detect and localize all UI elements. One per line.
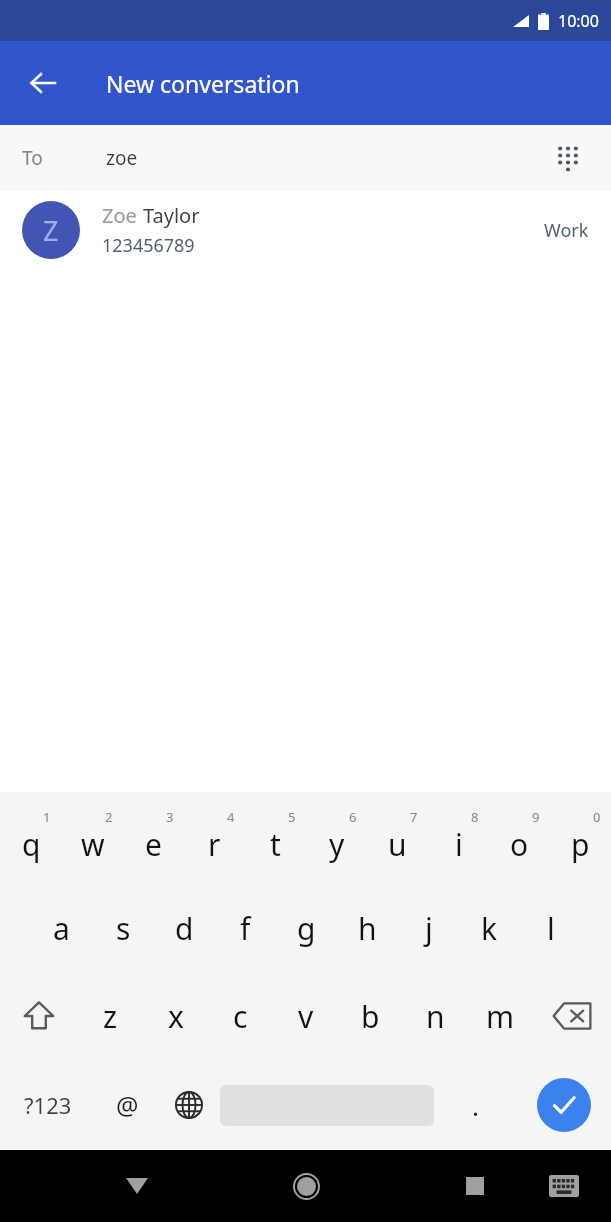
- staticText: x: [168, 996, 184, 1037]
- button[interactable]: n: [403, 972, 468, 1060]
- staticText: Z: [43, 212, 59, 249]
- staticText: w: [81, 824, 105, 865]
- button[interactable]: Recents: [450, 1161, 500, 1211]
- button[interactable]: 6: [306, 792, 367, 884]
- button[interactable]: 7: [367, 792, 428, 884]
- staticText: To: [22, 145, 43, 171]
- staticText: l: [547, 908, 555, 949]
- staticText: 10:00: [558, 10, 599, 32]
- staticText: n: [426, 996, 445, 1037]
- staticText: e: [145, 824, 162, 865]
- staticText: h: [358, 908, 377, 949]
- button[interactable]: l: [520, 884, 581, 972]
- button[interactable]: 4: [184, 792, 245, 884]
- staticText: Zoe: [102, 202, 143, 229]
- button[interactable]: Z: [0, 191, 611, 269]
- staticText: t: [270, 824, 281, 865]
- staticText: Taylor: [143, 202, 200, 229]
- staticText: 1: [43, 808, 51, 826]
- staticText: zoe: [106, 145, 138, 171]
- staticText: r: [208, 824, 221, 865]
- button[interactable]: x: [143, 972, 208, 1060]
- button[interactable]: Home: [281, 1161, 331, 1211]
- button[interactable]: b: [338, 972, 403, 1060]
- staticText: 6: [349, 808, 357, 826]
- staticText: ?123: [24, 1090, 72, 1120]
- button[interactable]: v: [273, 972, 338, 1060]
- button[interactable]: Dialpad: [545, 135, 591, 181]
- button[interactable]: d: [154, 884, 215, 972]
- staticText: 7: [410, 808, 418, 826]
- button[interactable]: j: [398, 884, 459, 972]
- staticText: b: [361, 996, 380, 1037]
- staticText: 8: [471, 808, 479, 826]
- button[interactable]: g: [276, 884, 337, 972]
- staticText: a: [53, 908, 70, 949]
- staticText: u: [388, 824, 407, 865]
- button[interactable]: @: [96, 1060, 158, 1150]
- staticText: i: [455, 824, 463, 865]
- button[interactable]: 3: [123, 792, 184, 884]
- button[interactable]: k: [459, 884, 520, 972]
- button[interactable]: Back: [20, 60, 66, 106]
- button[interactable]: s: [92, 884, 154, 972]
- button[interactable]: Shift: [0, 972, 78, 1060]
- staticText: s: [116, 908, 131, 949]
- staticText: q: [22, 824, 41, 865]
- button[interactable]: ?123: [0, 1060, 96, 1150]
- button[interactable]: Switch keyboard: [539, 1161, 589, 1211]
- staticText: d: [175, 908, 194, 949]
- staticText: y: [329, 824, 345, 865]
- button[interactable]: c: [208, 972, 273, 1060]
- button[interactable]: 9: [489, 792, 550, 884]
- staticText: Work: [544, 218, 589, 243]
- button[interactable]: 1: [0, 792, 62, 884]
- staticText: @: [116, 1088, 139, 1122]
- staticText: z: [103, 996, 118, 1037]
- button[interactable]: Send: [537, 1078, 591, 1132]
- staticText: p: [571, 824, 590, 865]
- button[interactable]: h: [337, 884, 398, 972]
- button[interactable]: Back: [112, 1161, 162, 1211]
- staticText: k: [481, 908, 498, 949]
- button[interactable]: 0: [550, 792, 611, 884]
- staticText: v: [298, 996, 314, 1037]
- staticText: o: [510, 824, 529, 865]
- button[interactable]: 5: [245, 792, 306, 884]
- staticText: c: [233, 996, 248, 1037]
- staticText: m: [486, 996, 515, 1037]
- button[interactable]: Backspace: [533, 972, 611, 1060]
- staticText: 9: [532, 808, 540, 826]
- button[interactable]: 8: [428, 792, 489, 884]
- staticText: j: [425, 908, 433, 949]
- staticText: f: [240, 908, 251, 949]
- staticText: 3: [166, 808, 174, 826]
- staticText: 5: [288, 808, 296, 826]
- button[interactable]: .: [434, 1060, 516, 1150]
- button[interactable]: a: [30, 884, 92, 972]
- staticText: 123456789: [102, 233, 195, 258]
- button[interactable]: 2: [62, 792, 123, 884]
- button[interactable]: Change language: [158, 1060, 220, 1150]
- button[interactable]: f: [215, 884, 276, 972]
- staticText: g: [297, 908, 316, 949]
- staticText: .: [472, 1088, 479, 1123]
- button[interactable]: m: [468, 972, 533, 1060]
- staticText: New conversation: [106, 68, 300, 99]
- staticText: 0: [593, 808, 601, 826]
- staticText: 4: [227, 808, 235, 826]
- button[interactable]: z: [78, 972, 143, 1060]
- staticText: 2: [105, 808, 113, 826]
